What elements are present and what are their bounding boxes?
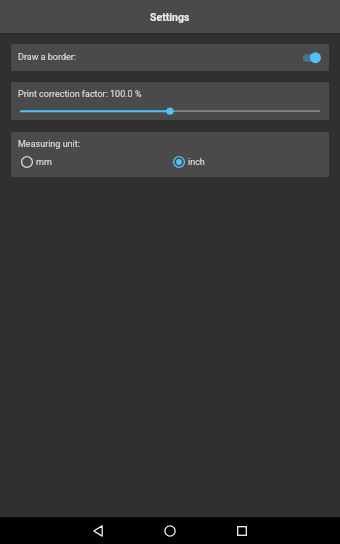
button[interactable]: Print correction factor slider bbox=[11, 106, 329, 116]
button[interactable]: Back bbox=[78, 517, 118, 544]
staticText: Settings bbox=[150, 11, 190, 23]
staticText: Print correction factor: 100.0 % bbox=[18, 89, 142, 100]
button[interactable]: Draw a border: bbox=[11, 44, 329, 71]
staticText: Draw a border: bbox=[18, 52, 77, 63]
staticText: inch bbox=[188, 157, 205, 168]
staticText: Measuring unit: bbox=[18, 139, 80, 150]
button[interactable]: inch bbox=[172, 151, 205, 173]
button[interactable]: Recent apps bbox=[222, 517, 262, 544]
button[interactable]: mm bbox=[20, 151, 52, 173]
button[interactable]: Draw a border bbox=[296, 48, 322, 68]
button[interactable]: Home bbox=[150, 517, 190, 544]
staticText: mm bbox=[36, 157, 52, 168]
button[interactable]: Print correction factor bbox=[11, 82, 329, 120]
